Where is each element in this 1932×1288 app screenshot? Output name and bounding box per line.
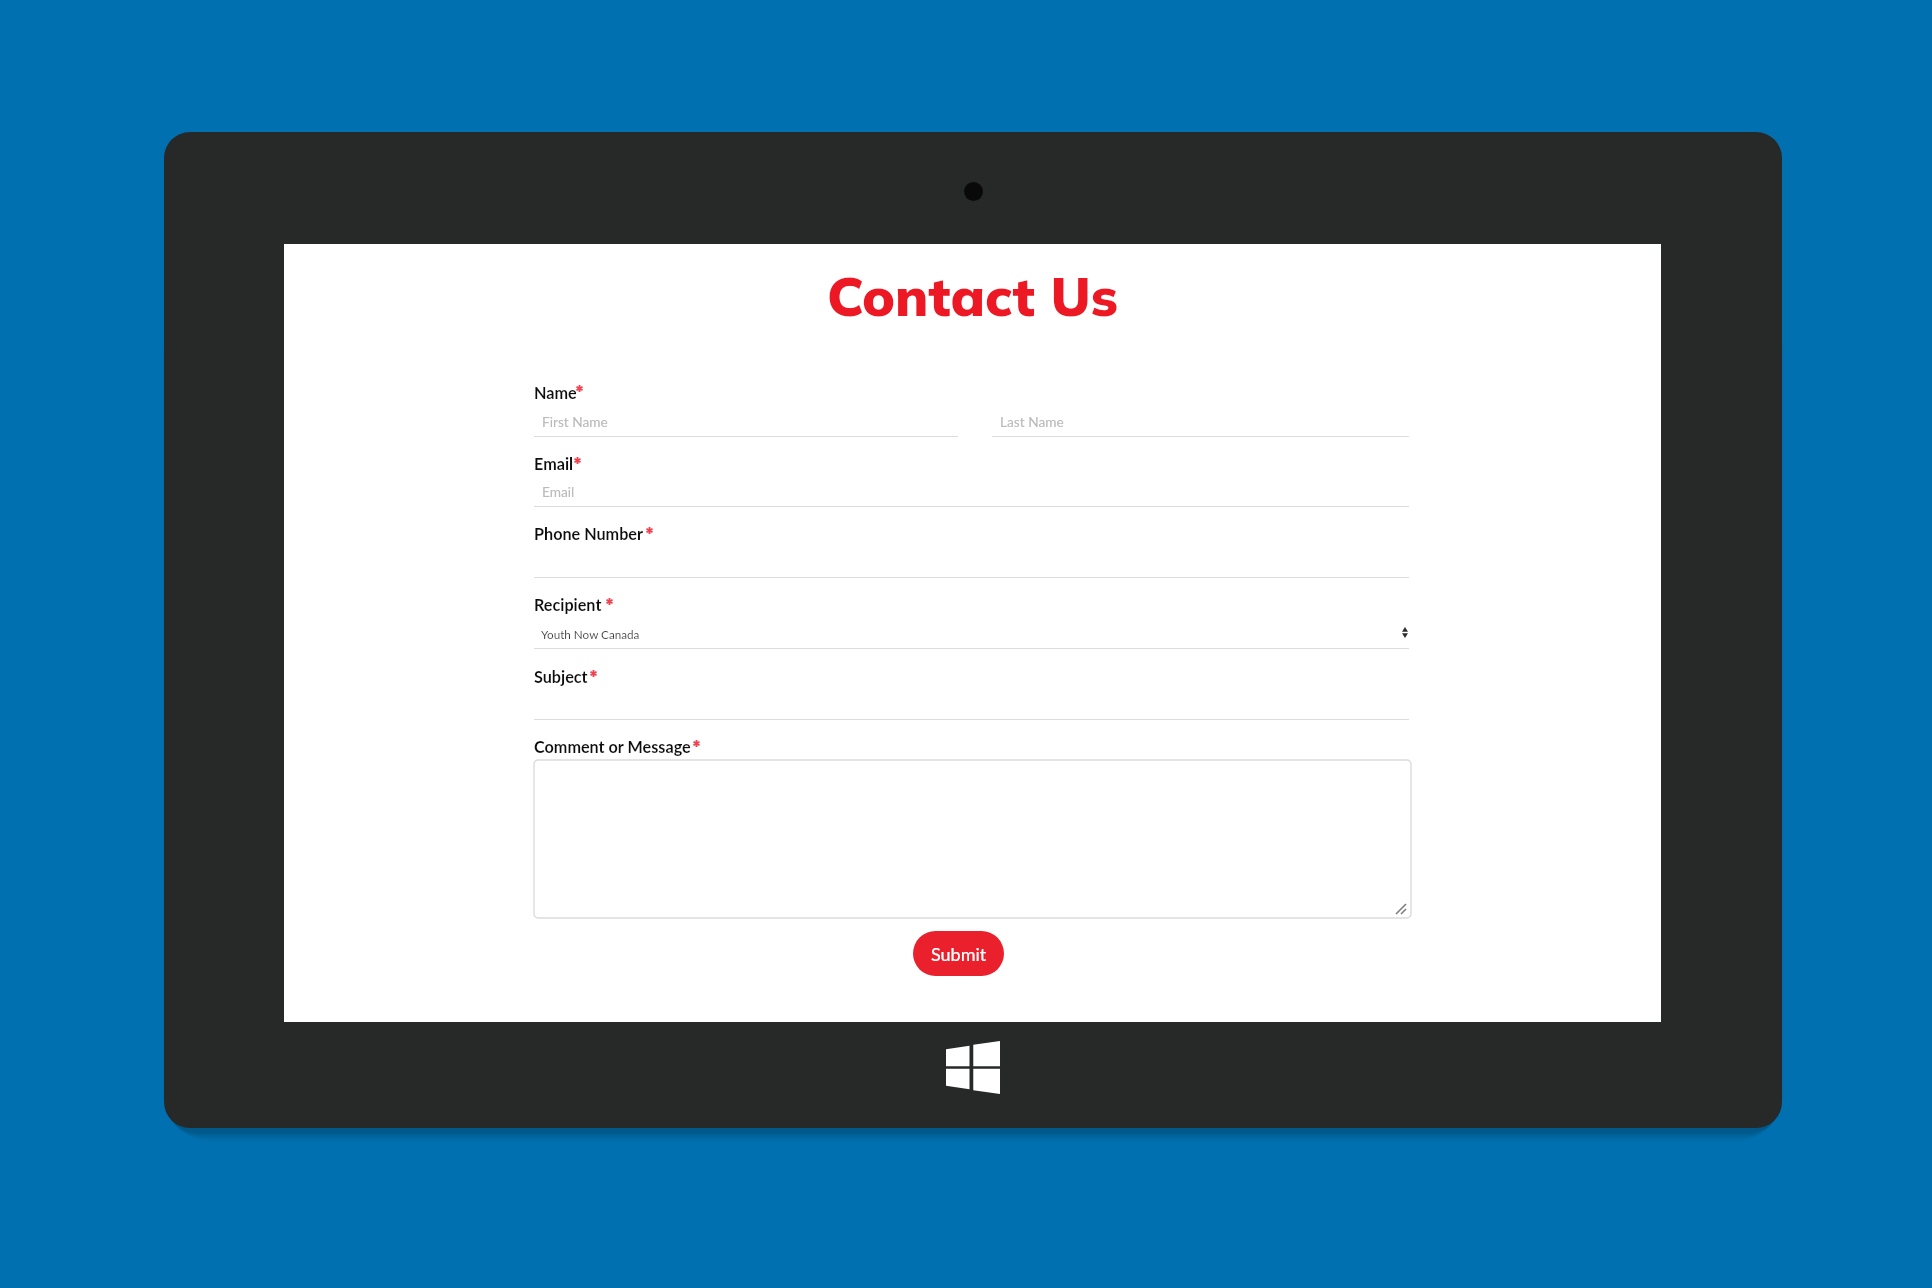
button[interactable] — [534, 545, 1409, 578]
button[interactable]: Recipient — [534, 595, 602, 614]
button[interactable]: Submit — [913, 931, 1004, 976]
staticText: Email — [542, 483, 575, 499]
staticText: Subject — [534, 667, 588, 686]
button[interactable]: Subject — [534, 667, 588, 686]
button[interactable] — [534, 404, 958, 436]
staticText: Last Name — [1000, 413, 1064, 429]
staticText: Youth Now Canada — [541, 627, 640, 641]
staticText: First Name — [542, 413, 608, 429]
staticText: Submit — [931, 943, 987, 965]
button[interactable] — [992, 404, 1409, 436]
staticText: Name — [534, 383, 577, 402]
staticText: Recipient — [534, 595, 602, 614]
staticText: Comment or Message — [534, 737, 691, 756]
button[interactable] — [534, 616, 1409, 649]
other: Windows — [946, 1041, 1000, 1094]
staticText: Phone Number — [534, 524, 644, 543]
staticText: Email — [534, 454, 574, 473]
button[interactable]: Phone Number — [534, 524, 644, 543]
button[interactable]: Email — [534, 454, 574, 473]
button[interactable] — [534, 760, 1411, 918]
button[interactable]: Name — [534, 383, 577, 402]
button[interactable] — [534, 475, 1409, 507]
staticText: Contact Us — [284, 262, 1661, 330]
other: Open recipient list — [1402, 627, 1408, 638]
button[interactable]: Comment or Message — [534, 737, 691, 756]
